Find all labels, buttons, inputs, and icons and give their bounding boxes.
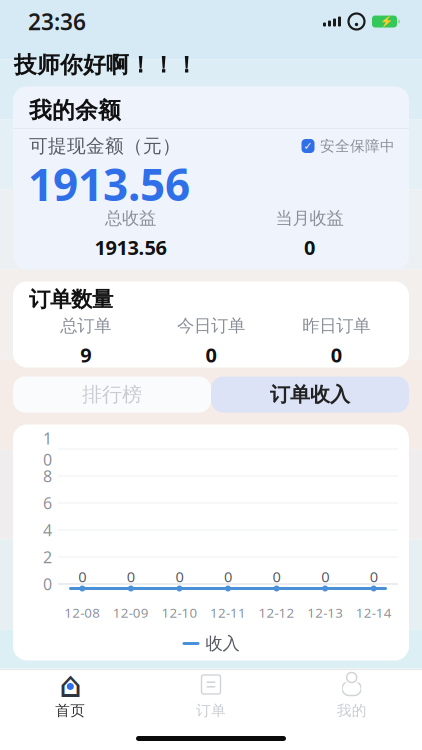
staticText: 12-09 bbox=[113, 604, 149, 621]
staticText: 订单收入 bbox=[270, 382, 350, 407]
button[interactable]: 我的 bbox=[281, 670, 422, 722]
staticText: 12-11 bbox=[210, 604, 246, 621]
staticText: 排行榜 bbox=[82, 382, 142, 407]
staticText: 8 bbox=[43, 465, 52, 487]
staticText: 0 bbox=[127, 567, 135, 586]
staticText: 0 bbox=[43, 573, 52, 595]
staticText: 总收益 bbox=[105, 208, 156, 229]
staticText: 昨日订单 bbox=[302, 315, 370, 336]
staticText: 4 bbox=[43, 519, 52, 541]
staticText: 9 bbox=[80, 341, 91, 368]
staticText: 1913.56 bbox=[94, 234, 166, 260]
button[interactable]: 订单 bbox=[141, 670, 281, 722]
staticText: ⌂ bbox=[59, 664, 82, 705]
staticText: 12-13 bbox=[307, 604, 343, 621]
staticText: 收入 bbox=[205, 633, 239, 654]
staticText: 0 bbox=[370, 567, 378, 586]
staticText: 2 bbox=[43, 546, 52, 568]
staticText: 0 bbox=[78, 567, 86, 586]
staticText: 23:36 bbox=[28, 6, 86, 36]
staticText: 6 bbox=[43, 492, 52, 514]
staticText: ⚡ bbox=[380, 15, 393, 28]
staticText: 0 bbox=[331, 341, 342, 368]
staticText: 我的 bbox=[337, 701, 367, 719]
staticText: 总订单 bbox=[60, 315, 111, 336]
staticText: ✓ bbox=[303, 140, 312, 152]
staticText: 10 bbox=[43, 428, 52, 470]
staticText: 技师你好啊！！！ bbox=[14, 51, 198, 79]
staticText: 1913.56 bbox=[28, 155, 190, 213]
staticText: 今日订单 bbox=[177, 315, 245, 336]
staticText: 0 bbox=[321, 567, 329, 586]
staticText: 订单 bbox=[196, 701, 226, 719]
staticText: 当月收益 bbox=[275, 208, 343, 229]
button[interactable]: 订单收入 bbox=[211, 376, 409, 412]
button[interactable]: 排行榜 bbox=[13, 376, 211, 412]
staticText: 0 bbox=[273, 567, 281, 586]
button[interactable]: ⌂ bbox=[0, 670, 141, 722]
staticText: 12-14 bbox=[356, 604, 392, 621]
staticText: 0 bbox=[224, 567, 232, 586]
staticText: 12-08 bbox=[64, 604, 100, 621]
staticText: 安全保障中 bbox=[320, 137, 395, 155]
staticText: 12-12 bbox=[259, 604, 295, 621]
staticText: 订单数量 bbox=[29, 286, 113, 313]
staticText: 我的余额 bbox=[29, 97, 121, 124]
staticText: 0 bbox=[175, 567, 183, 586]
staticText: 首页 bbox=[55, 701, 85, 719]
staticText: 可提现金额（元） bbox=[29, 134, 181, 157]
staticText: 12-10 bbox=[161, 604, 197, 621]
staticText: 0 bbox=[205, 341, 216, 368]
staticText: 0 bbox=[304, 234, 315, 260]
